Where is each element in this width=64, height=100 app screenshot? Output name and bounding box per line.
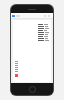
button[interactable]: App logo (12, 15, 15, 17)
button[interactable]: Home button (29, 86, 36, 93)
